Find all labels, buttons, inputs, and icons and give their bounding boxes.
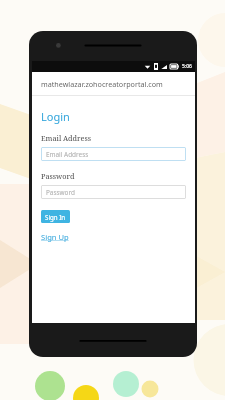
staticText: 5:06 bbox=[182, 63, 192, 70]
button[interactable]: mathewlazar.zohocreatorportal.com bbox=[32, 72, 195, 95]
staticText: Email Address bbox=[46, 150, 89, 159]
button[interactable]: Email Address bbox=[41, 147, 186, 161]
staticText: Password bbox=[41, 171, 75, 181]
staticText: mathewlazar.zohocreatorportal.com bbox=[41, 79, 163, 89]
button[interactable]: Sign In bbox=[41, 210, 70, 223]
staticText: Email Address bbox=[41, 133, 92, 143]
staticText: Sign In bbox=[45, 213, 66, 221]
staticText: Password bbox=[46, 188, 75, 197]
staticText: Sign Up bbox=[41, 232, 69, 242]
staticText: Login bbox=[41, 109, 70, 124]
button[interactable]: Password bbox=[41, 185, 186, 199]
button[interactable]: Sign Up bbox=[41, 232, 69, 242]
